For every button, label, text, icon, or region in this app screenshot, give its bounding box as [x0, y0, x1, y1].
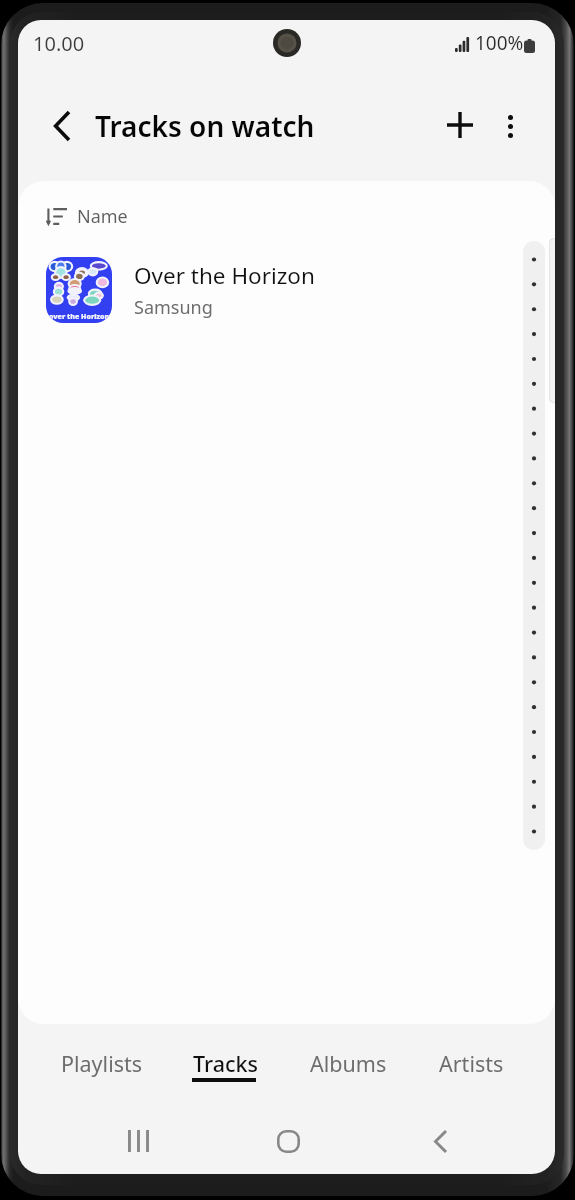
staticText: over the Horizon — [49, 312, 110, 322]
button[interactable]: Back — [35, 100, 87, 152]
button[interactable]: Playlists — [40, 1025, 164, 1095]
staticText: Playlists — [61, 1049, 143, 1078]
button[interactable]: over the Horizon — [18, 247, 555, 333]
button[interactable]: Artists — [410, 1025, 533, 1095]
button[interactable]: More options — [484, 100, 536, 152]
staticText: Name — [77, 204, 128, 229]
staticText: 10.00 — [33, 30, 85, 57]
staticText: Artists — [439, 1049, 504, 1078]
button[interactable]: Back — [416, 1117, 464, 1165]
button[interactable]: Albums — [287, 1025, 410, 1095]
staticText: Over the Horizon — [134, 260, 315, 291]
staticText: Albums — [310, 1049, 387, 1078]
button[interactable]: Recent apps — [114, 1117, 162, 1165]
button[interactable]: Add — [434, 99, 486, 151]
staticText: Tracks — [193, 1049, 258, 1078]
staticText: Samsung — [134, 295, 213, 320]
button[interactable]: Tracks — [164, 1025, 287, 1095]
staticText: Tracks on watch — [95, 107, 315, 145]
button[interactable]: Home — [264, 1117, 312, 1165]
staticText: 100% — [475, 30, 524, 56]
button[interactable]: Alphabet index — [523, 241, 545, 850]
button[interactable]: Name — [18, 190, 555, 242]
